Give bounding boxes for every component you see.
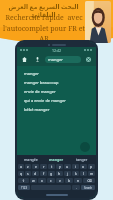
button[interactable]: o xyxy=(80,164,87,169)
staticText: manger beaucoup xyxy=(24,80,59,85)
button[interactable]: ?123 xyxy=(18,185,30,190)
button[interactable]: ⇧ xyxy=(18,178,29,183)
button[interactable]: manger xyxy=(17,69,96,78)
button[interactable]: d xyxy=(32,171,39,176)
staticText: y xyxy=(59,164,61,169)
button[interactable]: i xyxy=(72,164,79,169)
button[interactable]: q xyxy=(18,171,24,176)
staticText: tanger xyxy=(76,157,88,162)
staticText: e xyxy=(35,164,37,169)
staticText: Search xyxy=(84,186,93,190)
button[interactable]: t xyxy=(48,164,55,169)
staticText: d xyxy=(34,171,37,176)
button[interactable]: g xyxy=(48,171,55,176)
button[interactable]: ⌫ xyxy=(83,178,95,183)
button[interactable]: j xyxy=(64,171,71,176)
staticText: q xyxy=(20,171,23,176)
button[interactable]: e xyxy=(32,164,39,169)
button[interactable]: b xyxy=(65,178,73,183)
staticText: x xyxy=(41,178,43,183)
staticText: p xyxy=(90,164,93,169)
button[interactable]: Voice search xyxy=(33,55,42,64)
button[interactable]: bébé manger xyxy=(17,105,96,114)
staticText: ?123 xyxy=(21,186,28,190)
button[interactable]: Home xyxy=(20,55,29,64)
button[interactable]: manger xyxy=(43,156,69,162)
staticText: r xyxy=(43,164,45,169)
button[interactable]: y xyxy=(56,164,63,169)
staticText: s xyxy=(27,171,29,176)
staticText: k xyxy=(75,171,77,176)
button[interactable]: n xyxy=(74,178,82,183)
button[interactable]: manger beaucoup xyxy=(17,78,96,87)
button[interactable]: x xyxy=(38,178,46,183)
button[interactable]: v xyxy=(56,178,64,183)
staticText: 12:42 xyxy=(52,48,61,53)
staticText: ⇧ xyxy=(22,179,25,183)
button[interactable]: z xyxy=(25,164,31,169)
staticText: البحث السريع مع العرض التلقائي xyxy=(4,3,83,18)
button[interactable]: l xyxy=(80,171,87,176)
staticText: w xyxy=(32,178,35,183)
button[interactable]: tanger xyxy=(69,156,95,162)
staticText: f xyxy=(43,171,45,176)
staticText: bébé manger xyxy=(24,107,50,112)
button[interactable]: s xyxy=(25,171,31,176)
staticText: u xyxy=(66,164,69,169)
staticText: mangée xyxy=(24,157,38,162)
button[interactable]: envie de manger xyxy=(17,87,96,96)
button[interactable]: m xyxy=(88,171,95,176)
button[interactable]: h xyxy=(56,171,63,176)
button[interactable]: Clear xyxy=(84,55,93,64)
staticText: l xyxy=(83,171,84,176)
staticText: envie de manger xyxy=(24,89,56,94)
staticText: a xyxy=(20,164,22,169)
button[interactable]: r xyxy=(40,164,47,169)
staticText: Recherche rapide avec xyxy=(5,13,83,23)
staticText: manger xyxy=(48,57,63,62)
staticText: o xyxy=(82,164,85,169)
button[interactable]: Search xyxy=(81,185,95,190)
button[interactable]: qui a envie de manger xyxy=(17,96,96,105)
staticText: v xyxy=(59,178,61,183)
button[interactable]: u xyxy=(64,164,71,169)
button[interactable]: w xyxy=(30,178,37,183)
staticText: qui a envie de manger xyxy=(24,98,66,103)
staticText: b xyxy=(68,178,71,183)
staticText: . xyxy=(76,185,77,190)
button[interactable]: manger xyxy=(45,56,81,63)
staticText: z xyxy=(27,164,29,169)
button[interactable]: . xyxy=(72,185,80,190)
staticText: h xyxy=(58,171,61,176)
staticText: l'autocomplet pour FR et AR xyxy=(3,24,85,44)
staticText: g xyxy=(50,171,53,176)
staticText: j xyxy=(67,171,68,176)
button[interactable]: f xyxy=(40,171,47,176)
staticText: n xyxy=(77,178,80,183)
staticText: manger xyxy=(49,157,64,162)
button[interactable]: p xyxy=(88,164,95,169)
button[interactable]: Action xyxy=(80,142,90,152)
button[interactable]: mangée xyxy=(18,156,43,162)
button[interactable]: c xyxy=(47,178,55,183)
staticText: t xyxy=(51,164,53,169)
staticText: c xyxy=(50,178,52,183)
staticText: m xyxy=(90,171,94,176)
staticText: manger xyxy=(24,71,39,76)
button[interactable]: a xyxy=(18,164,24,169)
staticText: i xyxy=(75,164,76,169)
button[interactable]: k xyxy=(72,171,79,176)
staticText: ⌫ xyxy=(87,179,92,183)
